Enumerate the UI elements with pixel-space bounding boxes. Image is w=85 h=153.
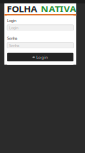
staticText: Login <box>36 54 48 60</box>
staticText: FOLHA <box>7 2 37 15</box>
staticText: Login <box>7 18 16 23</box>
staticText: Senha <box>9 43 19 48</box>
button[interactable]: Login <box>7 53 73 61</box>
staticText: Login <box>9 25 18 30</box>
staticText: NATIVA <box>37 2 76 15</box>
staticText: Senha <box>7 35 17 41</box>
